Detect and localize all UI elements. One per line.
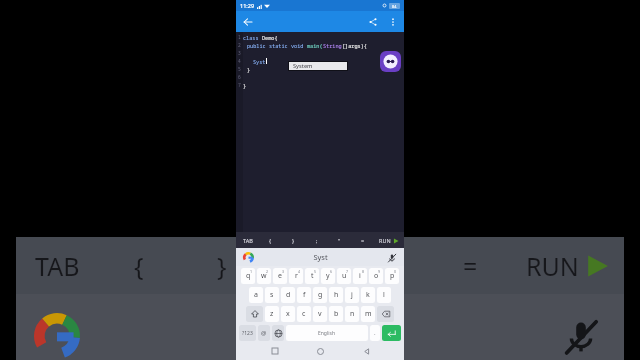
button[interactable]: More options — [387, 16, 399, 28]
staticText: ?123 — [242, 330, 253, 337]
button[interactable]: p — [385, 268, 399, 284]
button[interactable]: y — [321, 268, 335, 284]
button[interactable]: = — [351, 232, 374, 248]
staticText: j — [351, 290, 353, 300]
staticText: r — [295, 271, 298, 281]
button[interactable]: = — [429, 237, 512, 294]
button[interactable]: j — [345, 287, 359, 303]
staticText: English — [318, 330, 336, 337]
button[interactable]: o — [369, 268, 383, 284]
button[interactable]: q — [241, 268, 255, 284]
button[interactable]: Back — [359, 344, 373, 358]
button[interactable]: m — [361, 306, 375, 322]
staticText: Demo{ — [262, 34, 278, 41]
button[interactable]: Syst — [255, 248, 385, 266]
button[interactable]: n — [345, 306, 359, 322]
button[interactable]: t — [305, 268, 319, 284]
button[interactable]: . — [370, 325, 380, 341]
button[interactable]: } — [180, 237, 263, 294]
staticText: 8 — [362, 269, 365, 274]
button[interactable]: i — [353, 268, 367, 284]
button[interactable]: z — [265, 306, 279, 322]
staticText: g — [318, 290, 323, 300]
button[interactable]: " — [346, 237, 429, 294]
staticText: 2 — [266, 269, 269, 274]
button[interactable]: } — [282, 232, 305, 248]
staticText: String — [323, 42, 342, 49]
button[interactable]: Back — [241, 15, 255, 29]
button[interactable]: b — [329, 306, 343, 322]
button[interactable]: w — [257, 268, 271, 284]
button[interactable]: ; — [263, 237, 346, 294]
button[interactable]: l — [377, 287, 391, 303]
staticText: l — [383, 290, 385, 300]
button[interactable]: u — [337, 268, 351, 284]
staticText: x — [286, 309, 290, 319]
button[interactable]: Change language — [272, 325, 284, 341]
button[interactable]: TAB — [236, 232, 259, 248]
staticText: 4 — [238, 58, 241, 64]
button[interactable]: Assistant — [380, 51, 401, 72]
staticText: TAB — [35, 249, 80, 283]
staticText: f — [303, 290, 306, 300]
button[interactable]: { — [98, 237, 180, 294]
button[interactable]: Backspace — [377, 306, 394, 322]
staticText: 84 — [392, 4, 397, 9]
staticText: h — [334, 290, 339, 300]
staticText: n — [350, 309, 355, 319]
button[interactable]: System — [289, 62, 347, 70]
button[interactable]: r — [289, 268, 303, 284]
button[interactable]: Share — [366, 15, 380, 29]
staticText: TAB — [243, 237, 253, 244]
button[interactable]: English — [286, 325, 368, 341]
button[interactable]: k — [361, 287, 375, 303]
button[interactable]: a — [249, 287, 263, 303]
staticText: t — [311, 271, 314, 281]
button[interactable]: RUN — [512, 237, 624, 294]
staticText: public — [247, 42, 269, 49]
button[interactable]: f — [297, 287, 311, 303]
staticText: . — [374, 329, 376, 337]
staticText: = — [463, 249, 478, 283]
button[interactable]: s — [265, 287, 279, 303]
button[interactable]: Google — [242, 251, 255, 264]
staticText: 2 — [238, 42, 241, 48]
button[interactable]: " — [328, 232, 351, 248]
button[interactable]: Shift — [246, 306, 263, 322]
staticText: static — [269, 42, 291, 49]
staticText: e — [278, 271, 282, 281]
button[interactable]: Recents — [268, 344, 282, 358]
button[interactable]: ; — [305, 232, 328, 248]
button[interactable]: Enter — [382, 325, 401, 341]
button[interactable]: @ — [258, 325, 270, 341]
staticText: b — [334, 309, 339, 319]
staticText: ; — [301, 249, 308, 283]
button[interactable]: ?123 — [239, 325, 256, 341]
button[interactable]: d — [281, 287, 295, 303]
staticText: } — [243, 82, 247, 89]
button[interactable]: x — [281, 306, 295, 322]
staticText: u — [342, 271, 347, 281]
button[interactable]: Home — [313, 344, 327, 358]
staticText: 5 — [314, 269, 317, 274]
staticText: d — [286, 290, 291, 300]
button[interactable]: c — [297, 306, 311, 322]
staticText: RUN — [526, 249, 579, 283]
staticText: main( — [307, 42, 323, 49]
button[interactable]: e — [273, 268, 287, 284]
staticText: 1 — [238, 34, 241, 40]
staticText: " — [382, 249, 393, 283]
button[interactable]: RUN — [374, 232, 404, 248]
button[interactable]: h — [329, 287, 343, 303]
button[interactable]: TAB — [16, 237, 98, 294]
button[interactable]: Voice input off — [385, 251, 398, 264]
staticText: 3 — [238, 50, 241, 56]
button[interactable]: { — [259, 232, 282, 248]
button[interactable]: v — [313, 306, 327, 322]
staticText: k — [366, 290, 370, 300]
staticText: 3 — [282, 269, 285, 274]
staticText: 4 — [298, 269, 301, 274]
staticText: i — [359, 271, 361, 281]
staticText: 9 — [378, 269, 381, 274]
button[interactable]: g — [313, 287, 327, 303]
